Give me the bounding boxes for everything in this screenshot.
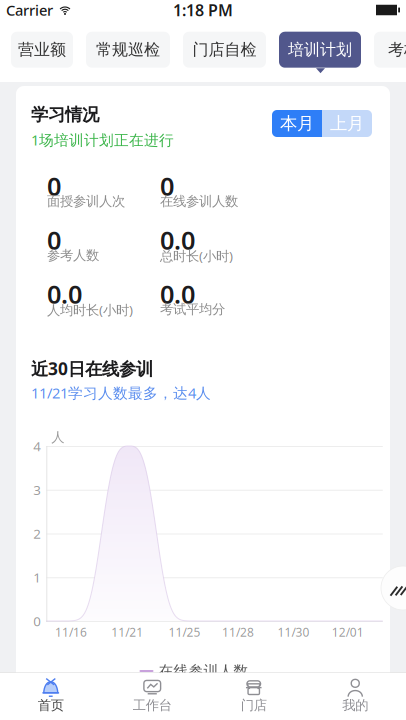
staticText: 0.0 bbox=[47, 277, 82, 311]
staticText: 培训计划 bbox=[288, 40, 352, 60]
staticText: 考试平均分 bbox=[160, 301, 225, 317]
staticText: 3 bbox=[33, 481, 41, 499]
staticText: 总时长(小时) bbox=[160, 247, 233, 265]
staticText: 4 bbox=[33, 437, 41, 455]
staticText: 本月 bbox=[280, 113, 314, 134]
button[interactable]: 首页 bbox=[0, 673, 101, 710]
staticText: 上月 bbox=[330, 113, 364, 134]
staticText: 0.0 bbox=[160, 223, 195, 257]
staticText: 0 bbox=[160, 169, 174, 203]
button[interactable]: 门店自检 bbox=[183, 32, 266, 68]
staticText: 0 bbox=[33, 612, 41, 630]
staticText: 面授参训人次 bbox=[47, 193, 125, 209]
staticText: 在线参训人数 bbox=[160, 193, 238, 209]
button[interactable]: 营业额 bbox=[11, 32, 73, 68]
staticText: 我的 bbox=[342, 697, 368, 713]
staticText: 近30日在线参训 bbox=[31, 357, 153, 380]
staticText: 11/30 bbox=[278, 624, 310, 640]
staticText: 11/25 bbox=[168, 624, 200, 640]
staticText: 0.0 bbox=[160, 277, 195, 311]
staticText: 11/28 bbox=[222, 624, 254, 640]
staticText: 12/01 bbox=[332, 624, 364, 640]
staticText: 人均时长(小时) bbox=[47, 301, 133, 319]
staticText: 11/16 bbox=[55, 624, 87, 640]
button[interactable]: 常规巡检 bbox=[86, 32, 170, 68]
staticText: 常规巡检 bbox=[96, 40, 160, 60]
staticText: Carrier bbox=[6, 0, 53, 20]
staticText: 0 bbox=[47, 169, 61, 203]
staticText: 工作台 bbox=[133, 697, 172, 713]
staticText: 营业额 bbox=[18, 40, 66, 60]
staticText: 1 bbox=[33, 568, 41, 586]
staticText: 在线参训人数 bbox=[158, 662, 248, 680]
button[interactable]: 本月 bbox=[272, 110, 322, 137]
button[interactable]: 我的 bbox=[304, 673, 406, 710]
staticText: 参考人数 bbox=[47, 247, 99, 263]
staticText: 门店 bbox=[241, 697, 267, 713]
staticText: 11/21 bbox=[111, 624, 143, 640]
staticText: 11/21学习人数最多，达4人 bbox=[31, 383, 211, 402]
button[interactable]: 考核 bbox=[374, 32, 406, 68]
staticText: 考核 bbox=[388, 40, 406, 60]
staticText: 2 bbox=[33, 525, 41, 542]
staticText: 0 bbox=[47, 223, 61, 257]
staticText: 首页 bbox=[38, 697, 64, 713]
staticText: 学习情况 bbox=[31, 104, 99, 125]
staticText: 人 bbox=[51, 429, 64, 445]
button[interactable]: Quick actions bbox=[381, 566, 406, 610]
staticText: 门店自检 bbox=[192, 40, 256, 60]
button[interactable]: 门店 bbox=[203, 673, 304, 710]
button[interactable]: 工作台 bbox=[101, 673, 203, 710]
staticText: 1场培训计划正在进行 bbox=[31, 130, 174, 149]
button[interactable]: 上月 bbox=[322, 110, 372, 137]
button[interactable]: 培训计划 bbox=[279, 32, 361, 68]
staticText: 1:18 PM bbox=[173, 0, 233, 21]
